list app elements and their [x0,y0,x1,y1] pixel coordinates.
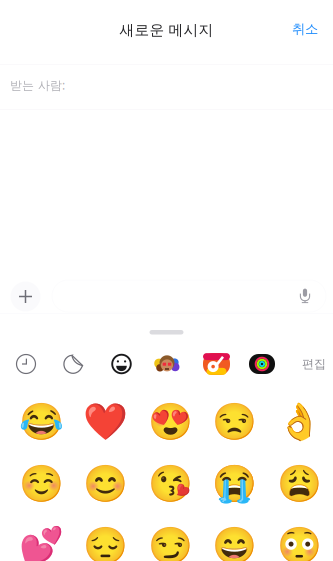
staticText: 😒 [212,401,257,442]
staticText: 받는 사람: [10,77,65,93]
staticText: 😄 [212,525,257,561]
button[interactable]: 😂 [9,397,73,447]
staticText: 😔 [83,525,128,561]
button[interactable]: ❤️ [73,397,138,447]
staticText: 😘 [147,463,192,504]
staticText: ❤️ [83,401,128,442]
staticText: 😍 [147,401,192,442]
button[interactable]: ☺️ [9,459,73,509]
button[interactable]: 편집 [293,350,333,378]
button[interactable]: Recently used [6,350,46,378]
button[interactable]: 😩 [267,459,331,509]
button[interactable]: Apps [10,281,40,311]
staticText: 편집 [302,357,326,371]
button[interactable]: 😄 [202,521,267,561]
button[interactable]: 😊 [73,459,138,509]
button[interactable]: 💕 [9,521,73,561]
staticText: 💕 [18,525,63,561]
button[interactable]: 😏 [138,521,202,561]
button[interactable]: Fitness stickers [242,350,282,378]
button[interactable]: 😍 [138,397,202,447]
button[interactable]: Audio message [291,280,319,312]
staticText: 😩 [276,463,321,504]
button[interactable]: Memoji stickers [147,350,187,378]
staticText: 😳 [276,525,321,561]
button[interactable]: 취소 [277,11,333,47]
staticText: 😭 [212,463,257,504]
button[interactable]: 😔 [73,521,138,561]
staticText: ☺️ [18,463,63,504]
staticText: 😏 [147,525,192,561]
staticText: 😊 [83,463,128,504]
button[interactable]: 😳 [267,521,331,561]
button[interactable]: 😒 [202,397,267,447]
button[interactable]: 👌 [267,397,331,447]
button[interactable]: GarageBand stickers [196,350,236,378]
staticText: 새로운 메시지 [119,21,213,39]
button[interactable]: Smileys and people [101,350,141,378]
button[interactable]: 😭 [202,459,267,509]
staticText: 😂 [18,401,63,442]
staticText: 👌 [276,401,321,442]
button[interactable]: 😘 [138,459,202,509]
button[interactable]: Stickers [54,350,94,378]
staticText: 취소 [292,21,318,37]
